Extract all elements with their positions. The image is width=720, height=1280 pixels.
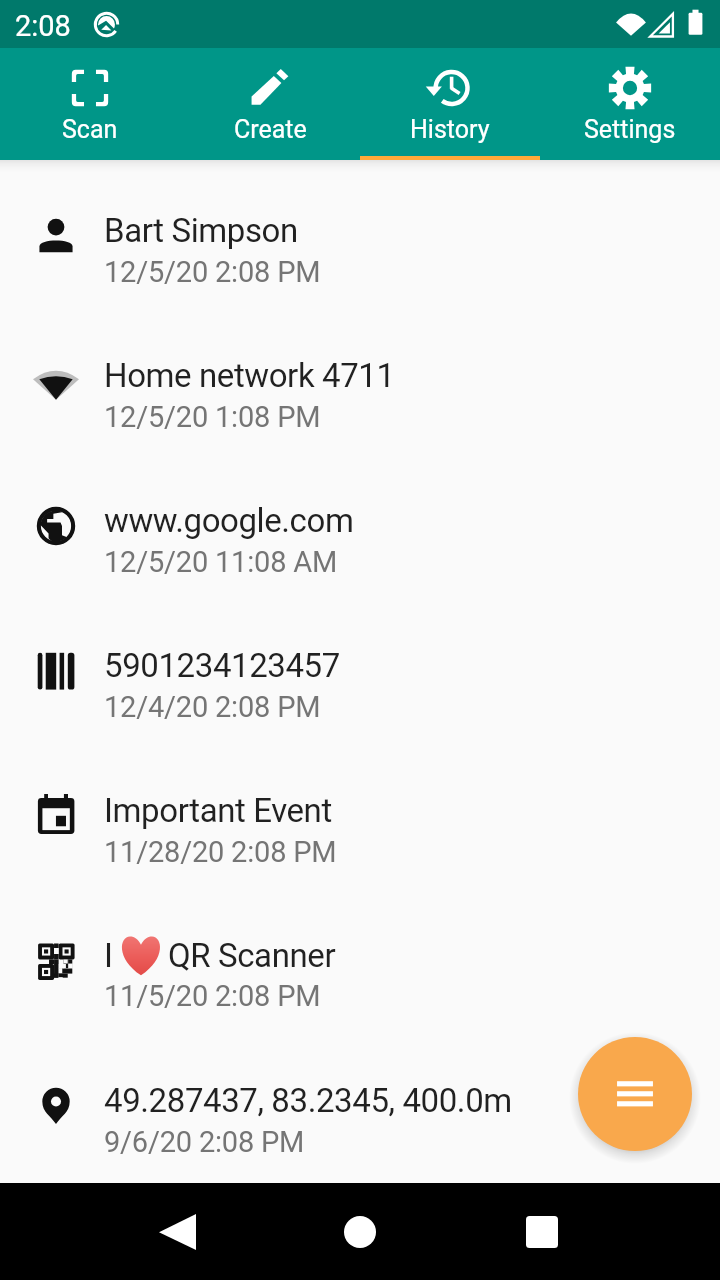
- button[interactable]: I: [0, 888, 720, 1033]
- button[interactable]: www.google.com: [0, 453, 720, 598]
- button[interactable]: Back: [137, 1192, 217, 1272]
- button[interactable]: Create: [180, 48, 360, 160]
- button[interactable]: 5901234123457: [0, 598, 720, 743]
- staticText: Scan: [62, 115, 118, 144]
- button[interactable]: Home network 4711: [0, 308, 720, 453]
- button[interactable]: Settings: [540, 48, 720, 160]
- button[interactable]: History: [360, 48, 540, 160]
- staticText: Create: [234, 115, 307, 144]
- staticText: 12/5/20 2:08 PM: [104, 255, 321, 289]
- staticText: 12/4/20 2:08 PM: [104, 690, 321, 724]
- button[interactable]: Recents: [502, 1192, 582, 1272]
- staticText: 49.287437, 83.2345, 400.0m: [104, 1081, 512, 1120]
- staticText: Important Event: [104, 791, 332, 830]
- button[interactable]: 49.287437, 83.2345, 400.0m: [0, 1033, 720, 1178]
- button[interactable]: Home: [320, 1192, 400, 1272]
- button[interactable]: Bart Simpson: [0, 163, 720, 308]
- button[interactable]: Scan: [0, 48, 180, 160]
- staticText: Bart Simpson: [104, 211, 298, 250]
- staticText: 5901234123457: [104, 646, 340, 685]
- staticText: 11/5/20 2:08 PM: [104, 979, 321, 1013]
- staticText: Home network 4711: [104, 356, 395, 395]
- staticText: 9/6/20 2:08 PM: [104, 1125, 305, 1159]
- staticText: www.google.com: [104, 501, 354, 540]
- staticText: 12/5/20 11:08 AM: [104, 545, 338, 579]
- staticText: 2:08: [15, 9, 71, 43]
- staticText: I: [104, 936, 113, 974]
- staticText: Settings: [584, 115, 676, 144]
- staticText: History: [410, 115, 490, 144]
- button[interactable]: Important Event: [0, 743, 720, 888]
- staticText: QR Scanner: [168, 936, 336, 974]
- button[interactable]: Menu: [578, 1037, 692, 1151]
- staticText: 12/5/20 1:08 PM: [104, 400, 321, 434]
- staticText: 11/28/20 2:08 PM: [104, 835, 337, 869]
